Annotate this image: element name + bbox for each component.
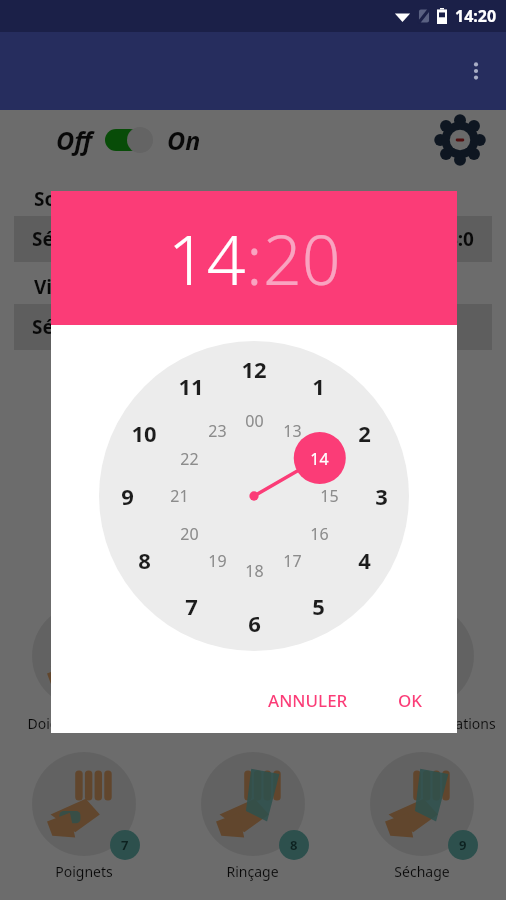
button[interactable]: 20 (263, 212, 341, 305)
button[interactable]: 9 (337, 748, 506, 881)
staticText: 8 (290, 836, 298, 854)
staticText: Séchage (394, 862, 450, 881)
staticText: OK (398, 689, 423, 712)
staticText: 22 (180, 448, 199, 470)
button[interactable]: 10 (127, 416, 161, 450)
button[interactable]: Ongles et articulations (337, 600, 506, 733)
staticText: Off (56, 123, 93, 157)
button[interactable]: 00 (239, 406, 269, 436)
staticText: 19 (208, 550, 227, 572)
button[interactable]: 8 (168, 748, 337, 881)
staticText: 6 (248, 608, 261, 638)
staticText: 12 (241, 354, 267, 384)
button[interactable]: 14 (304, 444, 334, 474)
staticText: 16 (310, 523, 329, 545)
staticText: 7 (185, 591, 198, 621)
staticText: 7 (121, 836, 129, 854)
button[interactable]: ANNULER (256, 681, 360, 720)
button[interactable]: 16 (304, 519, 334, 549)
staticText: 1 (312, 371, 325, 401)
button[interactable]: Doigts entrelacés (0, 600, 168, 733)
button[interactable]: 18 (239, 556, 269, 586)
button[interactable]: 5 (301, 589, 335, 623)
staticText: 14:0 (436, 226, 474, 252)
staticText: 5 (312, 591, 325, 621)
staticText: 21 (170, 485, 189, 507)
button[interactable]: Base des pouces (168, 600, 337, 733)
button[interactable]: Settings (432, 112, 488, 168)
button[interactable]: 23 (202, 416, 232, 446)
button[interactable]: 3 (364, 479, 398, 513)
button[interactable]: 13 (277, 416, 307, 446)
staticText: 23 (208, 420, 227, 442)
staticText: 00 (245, 410, 264, 432)
staticText: 14:20 (455, 5, 497, 27)
staticText: On (167, 123, 201, 157)
button[interactable]: 17 (277, 546, 307, 576)
button[interactable]: 1 (301, 369, 335, 403)
button[interactable]: 7 (0, 748, 168, 881)
button[interactable]: 11 (174, 369, 208, 403)
button[interactable]: 15 (314, 481, 344, 511)
staticText: ANNULER (268, 689, 348, 712)
button[interactable]: More options (452, 47, 500, 95)
button[interactable]: 12 (237, 352, 271, 386)
staticText: : (246, 212, 263, 305)
button[interactable]: Sélectionner (14, 304, 492, 350)
button[interactable]: 4 (347, 543, 381, 577)
button[interactable]: 22 (174, 444, 204, 474)
staticText: 3 (375, 481, 388, 511)
button[interactable]: OK (386, 681, 435, 720)
button[interactable]: 21 (164, 481, 194, 511)
button[interactable]: 2 (347, 416, 381, 450)
staticText: 11 (178, 371, 204, 401)
button[interactable]: 6 (237, 606, 271, 640)
staticText: 18 (245, 560, 264, 582)
staticText: 20 (180, 523, 199, 545)
staticText: Rinçage (226, 862, 279, 881)
button[interactable]: 8 (127, 543, 161, 577)
staticText: 13 (283, 420, 302, 442)
staticText: Poignets (55, 862, 113, 881)
staticText: Sélectionner (32, 314, 151, 340)
staticText: 10 (131, 418, 157, 448)
staticText: 8 (138, 545, 151, 575)
staticText: 9 (121, 481, 134, 511)
staticText: 4 (358, 545, 371, 575)
button[interactable]: 20 (174, 519, 204, 549)
staticText: 14 (310, 448, 329, 470)
button[interactable]: 19 (202, 546, 232, 576)
staticText: Ongles et articulations (347, 714, 496, 733)
button[interactable] (105, 127, 157, 153)
button[interactable]: 9 (110, 479, 144, 513)
staticText: 2 (358, 418, 371, 448)
staticText: 17 (283, 550, 302, 572)
staticText: Son de fin (34, 186, 128, 212)
staticText: Vidéo (34, 274, 88, 300)
button[interactable]: 7 (174, 589, 208, 623)
staticText: 15 (320, 485, 339, 507)
staticText: Doigts entrelacés (27, 714, 142, 733)
staticText: 9 (459, 836, 467, 854)
staticText: Sélectionner (32, 226, 151, 252)
button[interactable]: 14 (168, 212, 246, 305)
button[interactable]: Sélectionner (14, 216, 492, 262)
